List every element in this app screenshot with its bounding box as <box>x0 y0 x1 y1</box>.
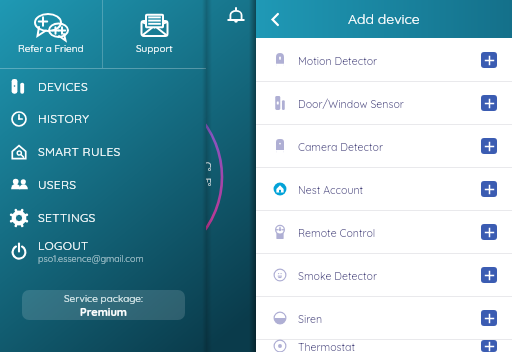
button[interactable]: USERS <box>0 168 206 201</box>
button[interactable]: SMART RULES <box>0 135 206 168</box>
button[interactable]: Camera Detector <box>256 125 512 167</box>
staticText: Door/Window Sensor <box>298 97 404 110</box>
button[interactable]: Add Camera Detector <box>481 138 497 154</box>
button[interactable]: Smoke Detector <box>256 254 512 296</box>
button[interactable]: DEVICES <box>0 70 206 102</box>
staticText: Smoke Detector <box>298 269 378 282</box>
button[interactable]: Remote Control <box>256 211 512 253</box>
button[interactable]: Support <box>103 0 206 68</box>
button[interactable]: Add Motion Detector <box>481 52 497 68</box>
staticText: Camera Detector <box>298 140 383 153</box>
staticText: USERS <box>38 177 77 192</box>
button[interactable]: HISTORY <box>0 102 206 135</box>
staticText: DEVICES <box>38 79 88 94</box>
button[interactable]: LOGOUT <box>0 234 206 267</box>
button[interactable]: Back <box>256 0 294 38</box>
staticText: F° <box>202 178 213 187</box>
button[interactable]: Motion Detector <box>256 39 512 81</box>
staticText: Add device <box>348 10 420 28</box>
button[interactable]: Thermostat <box>256 340 512 352</box>
staticText: Nest Account <box>298 183 364 196</box>
staticText: pso1.essence@gmail.com <box>38 253 144 264</box>
button[interactable]: Add Thermostat <box>481 340 497 352</box>
button[interactable]: Siren <box>256 297 512 339</box>
staticText: SMART RULES <box>38 144 121 159</box>
staticText: C° <box>202 162 213 171</box>
staticText: Thermostat <box>298 340 356 352</box>
staticText: LOGOUT <box>38 238 89 253</box>
staticText: Siren <box>298 312 323 325</box>
button[interactable]: Refer a Friend <box>0 0 102 68</box>
button[interactable]: Add Remote Control <box>481 224 497 240</box>
staticText: HISTORY <box>38 111 90 126</box>
button[interactable]: Add Smoke Detector <box>481 267 497 283</box>
staticText: Support <box>136 42 173 55</box>
button[interactable]: Door/Window Sensor <box>256 82 512 124</box>
staticText: SETTINGS <box>38 210 96 225</box>
staticText: Remote Control <box>298 226 376 239</box>
button[interactable]: SETTINGS <box>0 201 206 234</box>
staticText: Motion Detector <box>298 54 378 67</box>
staticText: Service package: <box>64 292 143 305</box>
button[interactable]: Nest Account <box>256 168 512 210</box>
button[interactable]: Add Siren <box>481 310 497 326</box>
button[interactable]: Add Door/Window Sensor <box>481 95 497 111</box>
staticText: Refer a Friend <box>18 42 84 55</box>
button[interactable]: Service package: <box>22 290 185 320</box>
button[interactable]: Add Nest Account <box>481 181 497 197</box>
button[interactable]: Notifications <box>222 2 250 30</box>
staticText: Premium <box>80 305 127 319</box>
